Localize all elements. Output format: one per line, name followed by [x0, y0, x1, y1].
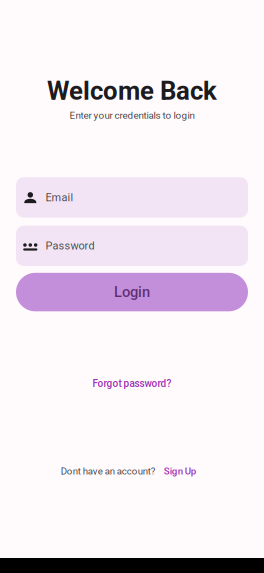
button[interactable]: Email — [16, 177, 248, 218]
staticText: Dont have an account? — [61, 466, 156, 477]
staticText: Welcome Back — [47, 76, 217, 106]
staticText: Forgot password? — [92, 378, 171, 389]
button[interactable]: Forgot password? — [86, 374, 177, 393]
button[interactable]: Password — [16, 226, 248, 266]
staticText: Password — [45, 239, 94, 252]
button[interactable]: Sign Up — [156, 466, 203, 477]
staticText: Login — [114, 283, 150, 301]
staticText: Enter your credentials to login — [69, 110, 194, 121]
staticText: Email — [45, 191, 73, 204]
staticText: Sign Up — [164, 466, 196, 477]
button[interactable]: Login — [16, 273, 248, 311]
